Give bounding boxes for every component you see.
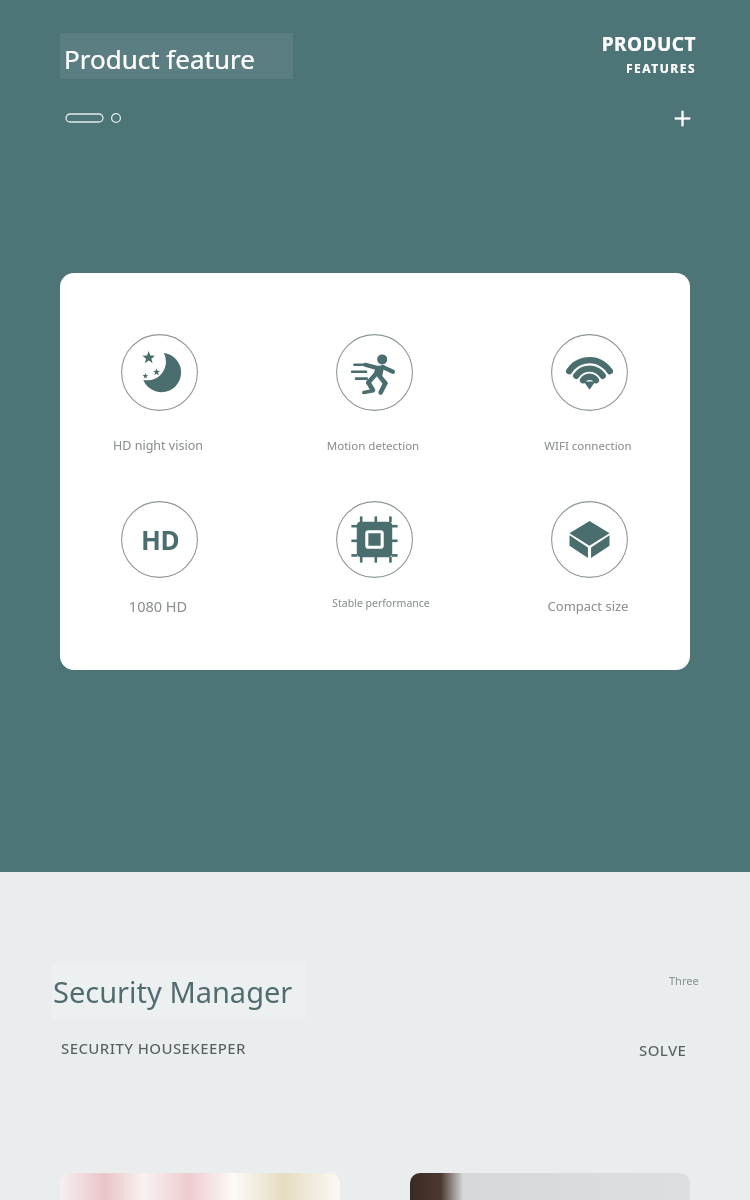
staticText: SOLVE (639, 1040, 687, 1060)
button[interactable]: 1080 HD (121, 501, 198, 578)
button[interactable]: WIFI connection (551, 334, 628, 411)
staticText: SECURITY HOUSEKEEPER (61, 1038, 246, 1058)
staticText: Product feature (64, 41, 255, 76)
staticText: Motion detection (293, 438, 453, 454)
button[interactable]: Photo card one (60, 1173, 340, 1200)
staticText: PRODUCT (601, 31, 696, 57)
staticText: HD (141, 522, 179, 557)
staticText: 1080 HD (78, 596, 238, 616)
staticText: Compact size (508, 597, 668, 615)
button[interactable]: Compact size (551, 501, 628, 578)
staticText: FEATURES (626, 60, 696, 76)
button[interactable]: Motion detection (336, 334, 413, 411)
staticText: Three (669, 973, 699, 988)
button[interactable]: HD night vision (121, 334, 198, 411)
staticText: HD night vision (78, 437, 238, 454)
staticText: WIFI connection (508, 438, 668, 454)
button[interactable]: Photo card two (410, 1173, 690, 1200)
staticText: Security Manager (53, 972, 293, 1011)
staticText: Stable performance (301, 596, 461, 610)
button[interactable]: Stable performance (336, 501, 413, 578)
button[interactable]: Add (664, 100, 700, 136)
